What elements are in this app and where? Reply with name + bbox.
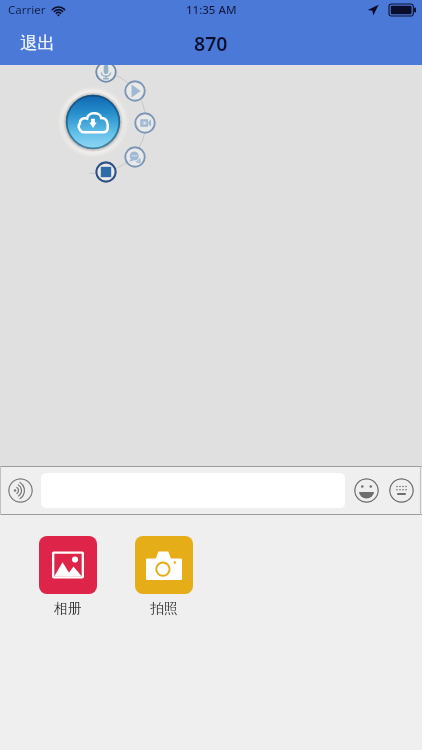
- button[interactable]: Microphone: [95, 61, 117, 83]
- button[interactable]: Play: [124, 80, 146, 102]
- staticText: 相册: [54, 600, 82, 618]
- button[interactable]: Stop: [95, 161, 117, 183]
- staticText: 870: [194, 30, 228, 57]
- button[interactable]: 退出: [0, 24, 69, 62]
- button[interactable]: Video: [134, 112, 156, 134]
- button[interactable]: Keyboard: [389, 478, 414, 503]
- staticText: Carrier: [8, 2, 46, 18]
- button[interactable]: Cloud download: [57, 86, 129, 158]
- staticText: 11:35 AM: [186, 2, 237, 18]
- button[interactable]: Voice input: [8, 478, 33, 503]
- staticText: 退出: [20, 32, 55, 54]
- button[interactable]: Emoji: [354, 478, 379, 503]
- staticText: 拍照: [150, 600, 178, 618]
- button[interactable]: Chat: [124, 146, 146, 168]
- button[interactable]: [135, 536, 193, 594]
- button[interactable]: [39, 536, 97, 594]
